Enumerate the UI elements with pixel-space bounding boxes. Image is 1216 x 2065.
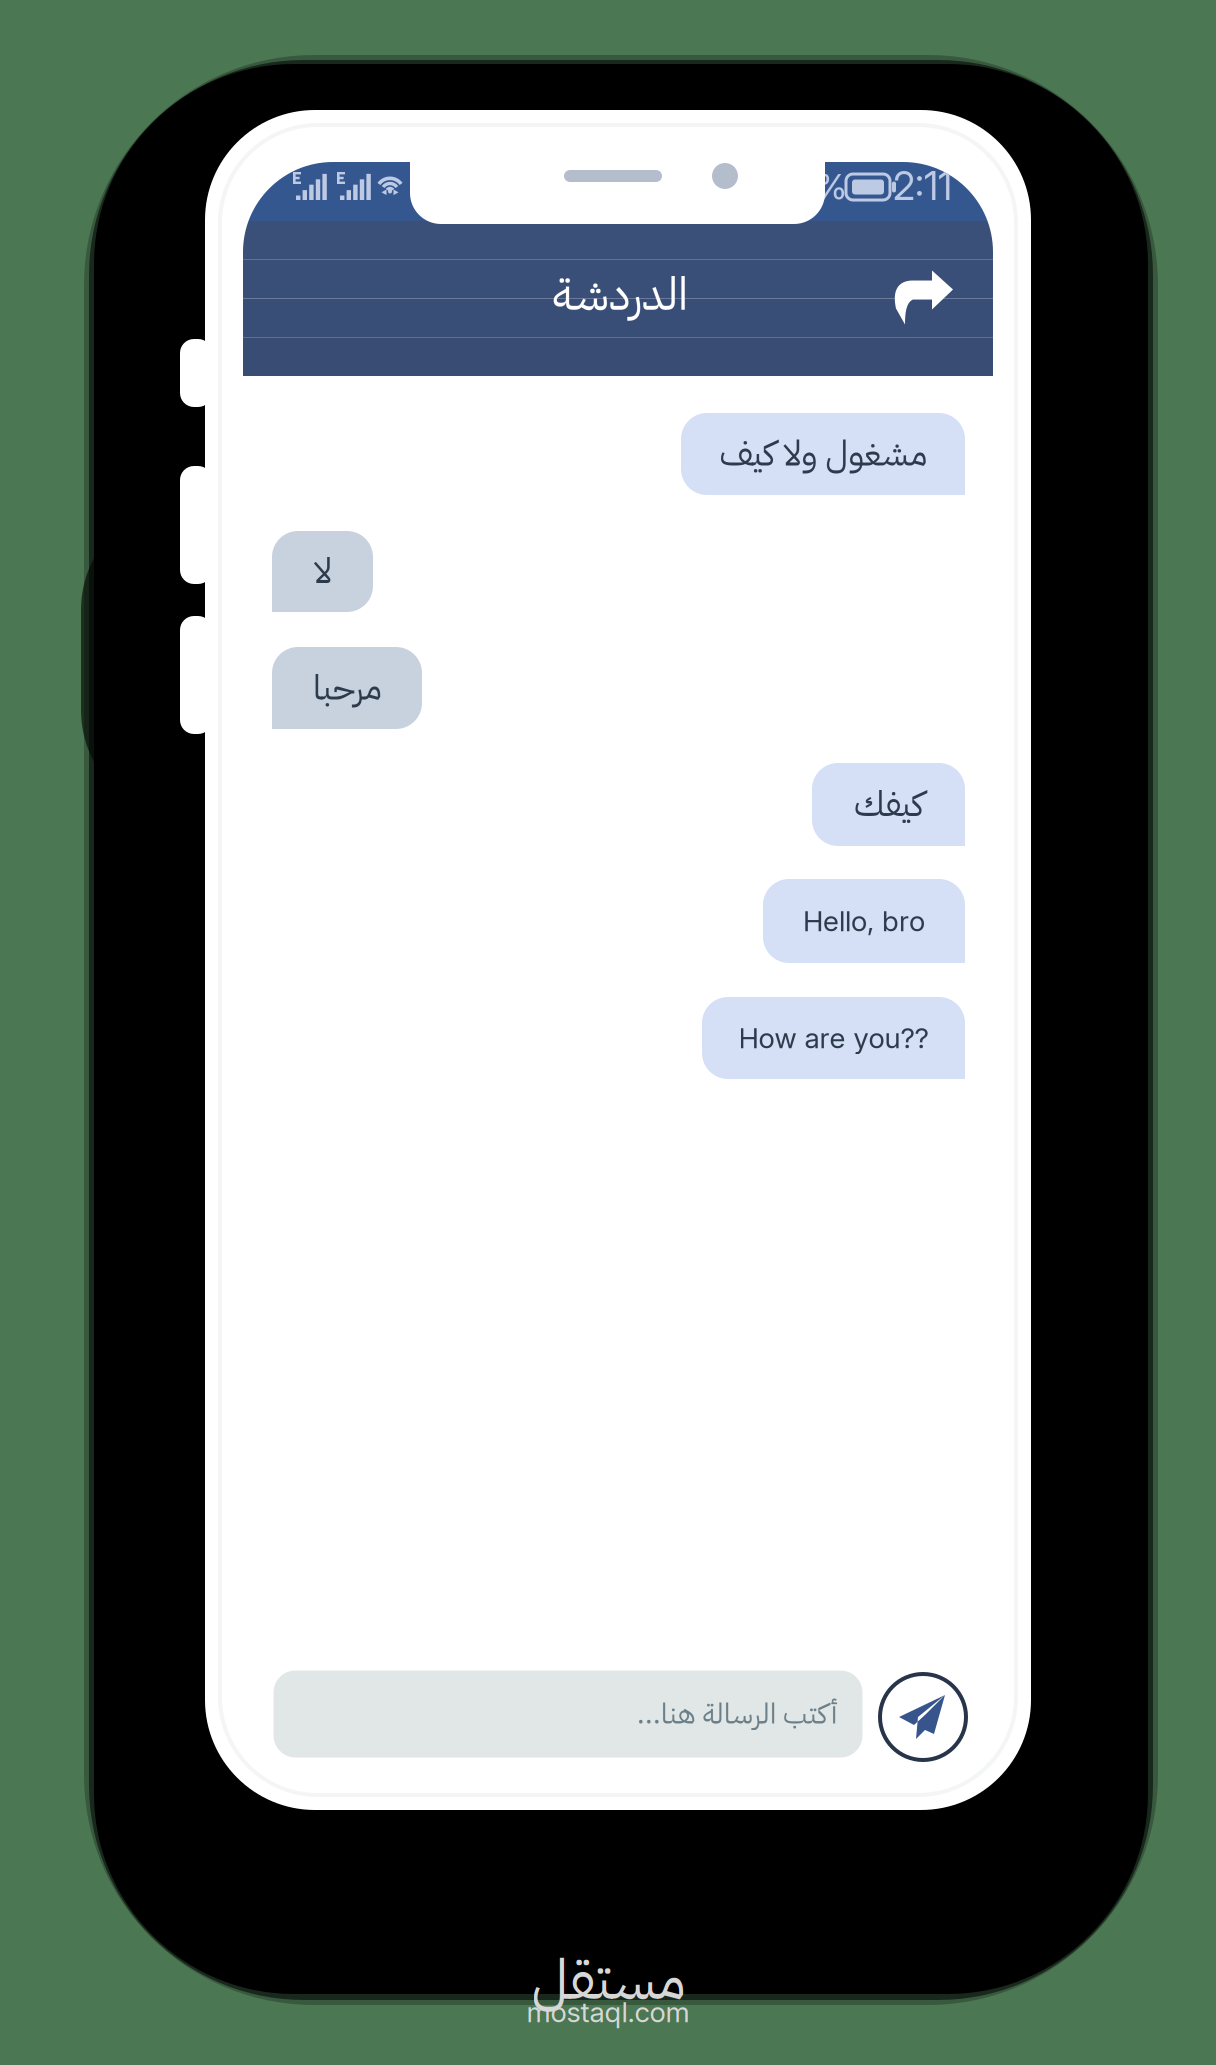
- button[interactable]: Send: [880, 1674, 966, 1760]
- staticText: How are you??: [738, 1021, 928, 1055]
- staticText: mostaql.com: [526, 1995, 689, 2029]
- staticText: Hello, bro: [803, 904, 925, 938]
- button[interactable]: Share: [891, 268, 953, 324]
- staticText: مستقل: [531, 1938, 685, 2022]
- staticText: الدردشة: [552, 260, 687, 328]
- staticText: لا: [313, 545, 331, 597]
- staticText: 97%: [777, 166, 847, 208]
- staticText: مرحبا: [312, 662, 381, 714]
- staticText: مشغول ولا كيف: [719, 428, 927, 480]
- staticText: أكتب الرسالة هنا...: [636, 1693, 836, 1735]
- staticText: 2:11: [893, 163, 952, 209]
- staticText: كيفك: [853, 778, 923, 830]
